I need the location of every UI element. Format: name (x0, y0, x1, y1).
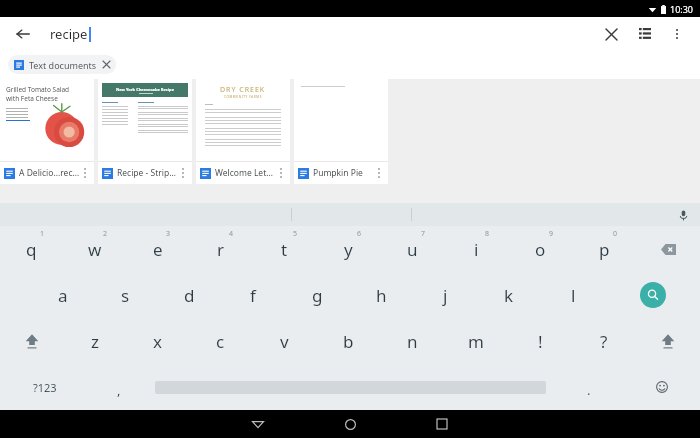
button[interactable]: ?123 (0, 364, 90, 410)
staticText: ? (600, 330, 608, 353)
staticText: u (407, 238, 418, 261)
staticText: c (216, 330, 225, 353)
staticText: Text documents (29, 59, 97, 71)
button[interactable]: c (189, 318, 252, 364)
button[interactable]: New York Cheesecake Recipe (98, 79, 192, 184)
staticText: Welcome Letter (215, 167, 276, 179)
staticText: 6 (357, 229, 362, 239)
button[interactable]: z (63, 318, 126, 364)
button[interactable]: g (285, 272, 349, 318)
staticText: Grilled Tomato Salad (6, 85, 70, 94)
staticText: recipe (50, 25, 88, 43)
staticText: o (535, 238, 546, 261)
button[interactable]: 2 (63, 226, 126, 272)
staticText: 9 (549, 229, 554, 239)
button[interactable]: 1 (0, 226, 63, 272)
staticText: b (343, 330, 354, 353)
button[interactable]: ! (508, 318, 572, 364)
button[interactable]: Search (640, 282, 666, 308)
staticText: z (91, 330, 99, 353)
staticText: w (88, 238, 102, 261)
button[interactable]: j (413, 272, 477, 318)
button[interactable]: Clear search (598, 21, 624, 47)
staticText: 3 (166, 229, 171, 239)
staticText: 5 (293, 229, 298, 239)
button[interactable]: n (380, 318, 444, 364)
button[interactable]: k (477, 272, 541, 318)
staticText: r (217, 238, 225, 261)
staticText: A Delicio...recipe (19, 167, 80, 179)
button[interactable]: 4 (189, 226, 252, 272)
button[interactable]: ? (572, 318, 636, 364)
staticText: . (587, 381, 591, 399)
button[interactable]: h (349, 272, 413, 318)
staticText: Pumpkin Pie (313, 167, 374, 179)
button[interactable]: f (221, 272, 285, 318)
staticText: ?123 (33, 380, 57, 395)
button[interactable]: Home (324, 410, 376, 438)
button[interactable]: v (252, 318, 316, 364)
button[interactable]: Switch to list view (632, 21, 658, 47)
staticText: 0 (613, 229, 618, 239)
staticText: 7 (421, 229, 426, 239)
staticText: COMMUNITY FARMS (224, 95, 262, 99)
button[interactable]: DRY CREEK (196, 79, 290, 184)
button[interactable]: l (541, 272, 605, 318)
button[interactable]: Shift (636, 318, 700, 364)
button[interactable]: 7 (380, 226, 444, 272)
button[interactable]: 3 (126, 226, 189, 272)
button[interactable]: 6 (316, 226, 380, 272)
button[interactable]: s (94, 272, 157, 318)
staticText: d (184, 284, 195, 307)
staticText: m (468, 330, 484, 353)
button[interactable]: Text documents (8, 55, 116, 74)
button[interactable]: File options (276, 162, 286, 184)
button[interactable]: Recent apps (416, 410, 468, 438)
button[interactable]: Pumpkin Pie (294, 79, 388, 184)
button[interactable]: Back (10, 21, 36, 47)
staticText: 10:30 (670, 3, 694, 15)
staticText: 1 (40, 229, 45, 239)
button[interactable]: m (444, 318, 508, 364)
staticText: h (376, 284, 387, 307)
staticText: l (571, 284, 576, 307)
staticText: , (117, 381, 121, 399)
button[interactable]: Backspace (636, 226, 700, 272)
button[interactable]: Shift (0, 318, 63, 364)
button[interactable]: More options (664, 21, 690, 47)
button[interactable]: Back (232, 410, 284, 438)
staticText: Recipe - Striped (117, 167, 178, 179)
staticText: DRY CREEK (220, 85, 266, 95)
button[interactable]: Voice input (674, 206, 692, 224)
button[interactable]: b (316, 318, 380, 364)
staticText: 4 (229, 229, 234, 239)
button[interactable]: File options (178, 162, 188, 184)
button[interactable]: File options (80, 162, 90, 184)
staticText: q (26, 238, 37, 261)
staticText: i (474, 238, 479, 261)
staticText: k (504, 284, 514, 307)
staticText: y (344, 238, 353, 261)
button[interactable]: 0 (572, 226, 636, 272)
staticText: with Feta Cheese (6, 94, 58, 103)
button[interactable]: 8 (444, 226, 508, 272)
staticText: s (121, 284, 130, 307)
staticText: f (250, 284, 256, 307)
button[interactable]: . (554, 364, 624, 410)
button[interactable]: d (157, 272, 221, 318)
button[interactable]: a (31, 272, 94, 318)
staticText: ! (538, 330, 543, 353)
button[interactable]: , (90, 364, 147, 410)
button[interactable]: Grilled Tomato Salad (0, 79, 94, 184)
button[interactable]: Space (147, 364, 554, 410)
button[interactable]: File options (374, 162, 384, 184)
button[interactable]: x (126, 318, 189, 364)
staticText: t (281, 238, 288, 261)
button[interactable]: 9 (508, 226, 572, 272)
staticText: p (599, 238, 610, 261)
staticText: j (443, 284, 448, 307)
staticText: 8 (485, 229, 490, 239)
button[interactable]: 5 (252, 226, 316, 272)
staticText: New York Cheesecake Recipe (116, 87, 175, 92)
button[interactable]: Emoji (624, 364, 700, 410)
